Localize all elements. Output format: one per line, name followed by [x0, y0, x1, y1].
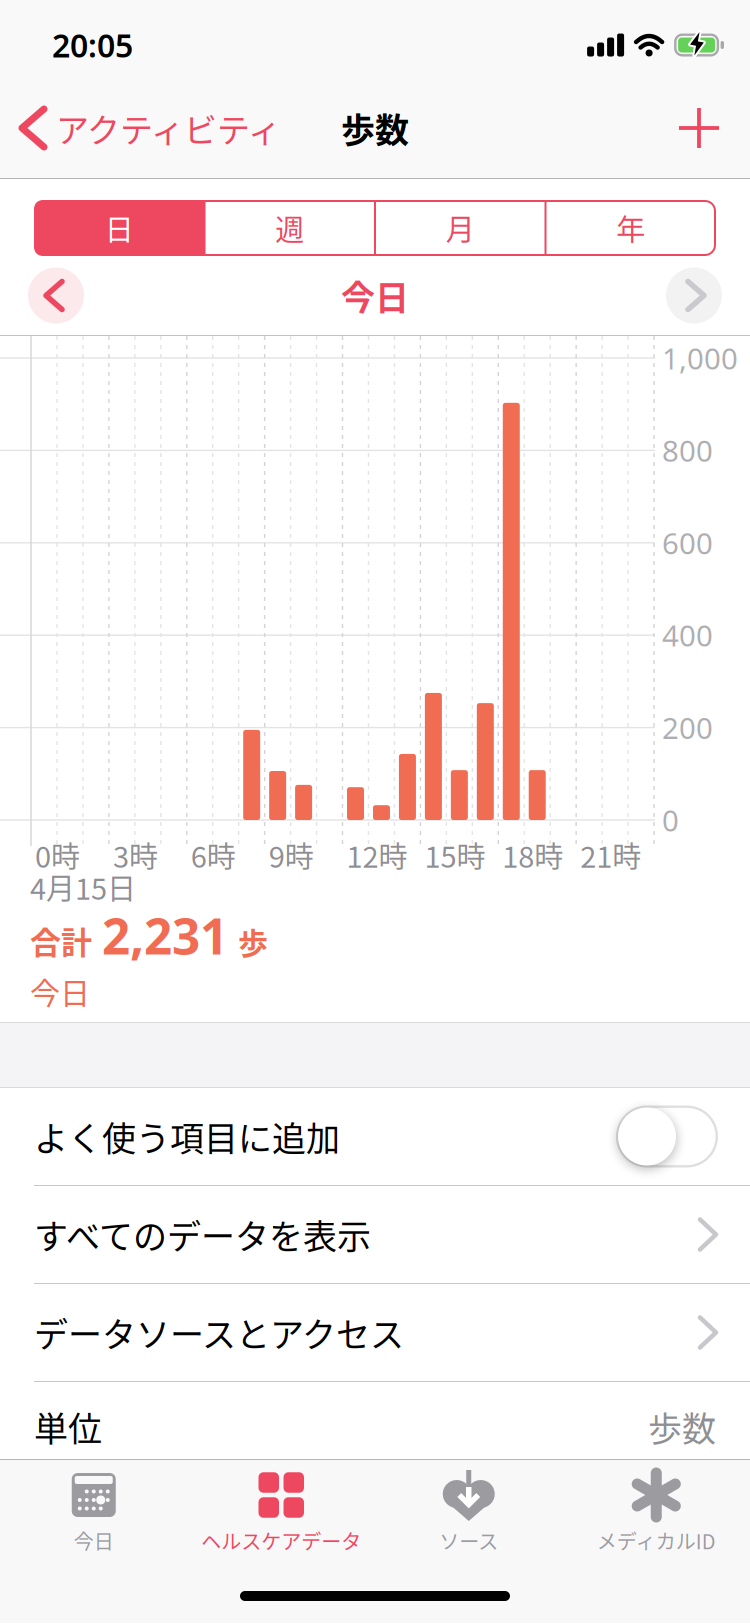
staticText: 歩 — [238, 920, 268, 963]
staticText: 今日 — [30, 969, 90, 1013]
staticText: 3時 — [113, 834, 158, 876]
button[interactable]: 日 — [34, 200, 204, 256]
button[interactable]: すべてのデータを表示 — [0, 1186, 750, 1283]
button[interactable]: データソースとアクセス — [0, 1284, 750, 1381]
button[interactable]: メディカルID — [562, 1471, 750, 1555]
staticText: 1,000 — [662, 338, 738, 377]
button[interactable]: 月 — [375, 200, 545, 256]
staticText: 週 — [275, 207, 304, 249]
staticText: 今日 — [74, 1526, 114, 1555]
staticText: 日 — [105, 207, 134, 249]
staticText: 今日 — [341, 271, 409, 320]
staticText: 単位 — [34, 1402, 102, 1451]
button[interactable] — [28, 267, 84, 323]
staticText: データソースとアクセス — [34, 1308, 404, 1357]
staticText: メディカルID — [597, 1526, 716, 1555]
staticText: 6時 — [191, 834, 236, 876]
button[interactable]: アクティビティ — [0, 104, 281, 152]
staticText: 歩数 — [341, 103, 409, 153]
button[interactable]: 年 — [545, 200, 716, 256]
button[interactable] — [666, 267, 722, 323]
staticText: 歩数 — [648, 1402, 716, 1451]
staticText: 21時 — [580, 834, 641, 876]
staticText: 800 — [662, 431, 713, 470]
staticText: 600 — [662, 523, 713, 562]
button[interactable] — [679, 108, 750, 148]
staticText: 年 — [616, 207, 645, 249]
button[interactable]: よく使う項目に追加 — [0, 1088, 750, 1185]
staticText: 9時 — [269, 834, 314, 876]
staticText: 4月15日 — [30, 866, 136, 908]
staticText: 18時 — [502, 834, 563, 876]
staticText: 2,231 — [102, 902, 228, 968]
button[interactable]: ソース — [375, 1471, 562, 1555]
button[interactable]: ヘルスケアデータ — [187, 1471, 375, 1555]
staticText: 合計 — [30, 918, 92, 963]
staticText: 月 — [446, 207, 475, 249]
staticText: すべてのデータを表示 — [34, 1210, 371, 1259]
staticText: 12時 — [346, 834, 407, 876]
staticText: ヘルスケアデータ — [201, 1526, 361, 1555]
staticText: 20:05 — [52, 24, 133, 66]
staticText: 0時 — [35, 834, 80, 876]
button[interactable]: 今日 — [0, 1471, 187, 1555]
staticText: ソース — [439, 1526, 498, 1555]
staticText: アクティビティ — [56, 104, 281, 152]
staticText: 0 — [662, 800, 679, 839]
staticText: よく使う項目に追加 — [34, 1112, 340, 1161]
staticText: 15時 — [424, 834, 485, 876]
staticText: 200 — [662, 708, 713, 747]
button[interactable]: 週 — [204, 200, 375, 256]
staticText: 400 — [662, 616, 713, 655]
button[interactable]: 単位 — [0, 1382, 750, 1459]
